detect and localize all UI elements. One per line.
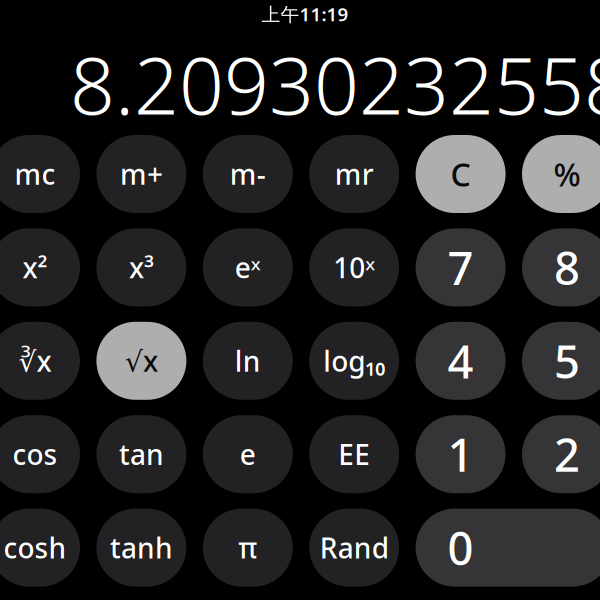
button[interactable]: ∛x (0, 322, 80, 400)
staticText: Rand (320, 529, 389, 566)
staticText: cos (12, 436, 57, 473)
staticText: 8 (554, 237, 580, 297)
button[interactable]: 10ˣ (309, 228, 399, 306)
staticText: m- (230, 155, 266, 193)
staticText: % (553, 153, 580, 195)
staticText: 2 (554, 424, 580, 484)
button[interactable]: log₁₀ (309, 322, 399, 400)
staticText: log₁₀ (323, 342, 385, 379)
button[interactable]: % (522, 135, 600, 213)
staticText: 8.20930232558139 (70, 32, 600, 136)
button[interactable]: x³ (96, 228, 186, 306)
staticText: EE (338, 436, 370, 473)
staticText: tanh (110, 529, 173, 566)
button[interactable]: C (416, 135, 506, 213)
staticText: √x (125, 342, 158, 379)
button[interactable]: √x (96, 322, 186, 400)
staticText: ln (235, 342, 261, 379)
staticText: mr (335, 155, 374, 193)
staticText: mc (14, 155, 55, 193)
button[interactable]: x² (0, 228, 80, 306)
staticText: e (240, 436, 256, 473)
staticText: ∛x (18, 342, 51, 379)
staticText: m+ (120, 155, 163, 193)
button[interactable]: 2 (522, 415, 600, 493)
button[interactable]: 5 (522, 322, 600, 400)
button[interactable]: mr (309, 135, 399, 213)
staticText: 5 (554, 331, 580, 391)
staticText: 1 (448, 424, 474, 484)
button[interactable]: tanh (96, 509, 186, 587)
staticText: eˣ (235, 249, 261, 286)
button[interactable]: m+ (96, 135, 186, 213)
staticText: x³ (129, 249, 154, 286)
staticText: cosh (3, 529, 66, 566)
button[interactable]: tan (96, 415, 186, 493)
staticText: C (451, 153, 471, 195)
button[interactable]: m- (203, 135, 293, 213)
button[interactable]: Rand (309, 509, 399, 587)
staticText: 10ˣ (333, 249, 375, 286)
staticText: tan (119, 436, 164, 473)
staticText: π (238, 529, 257, 566)
button[interactable]: 8 (522, 228, 600, 306)
staticText: 4 (448, 331, 474, 391)
button[interactable]: EE (309, 415, 399, 493)
staticText: 上午11:19 (261, 2, 348, 26)
staticText: x² (22, 249, 47, 286)
button[interactable]: mc (0, 135, 80, 213)
button[interactable]: 0 (416, 509, 600, 587)
button[interactable]: 1 (416, 415, 506, 493)
staticText: 7 (448, 237, 474, 297)
button[interactable]: e (203, 415, 293, 493)
button[interactable]: π (203, 509, 293, 587)
button[interactable]: cos (0, 415, 80, 493)
staticText: 0 (448, 517, 474, 578)
button[interactable]: ln (203, 322, 293, 400)
button[interactable]: cosh (0, 509, 80, 587)
button[interactable]: 7 (416, 228, 506, 306)
button[interactable]: 4 (416, 322, 506, 400)
button[interactable]: eˣ (203, 228, 293, 306)
